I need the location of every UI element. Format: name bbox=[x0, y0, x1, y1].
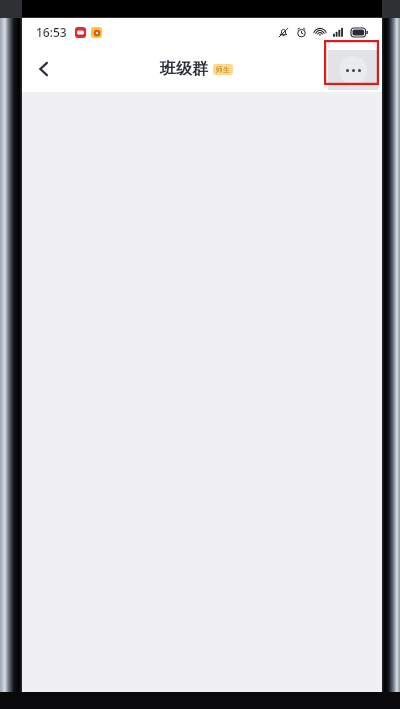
button[interactable]: More options bbox=[328, 50, 378, 90]
staticText: 师生 bbox=[216, 65, 230, 74]
staticText: 16:53 bbox=[36, 24, 67, 40]
button[interactable]: Back bbox=[22, 47, 66, 91]
staticText: 班级群 bbox=[160, 59, 208, 79]
